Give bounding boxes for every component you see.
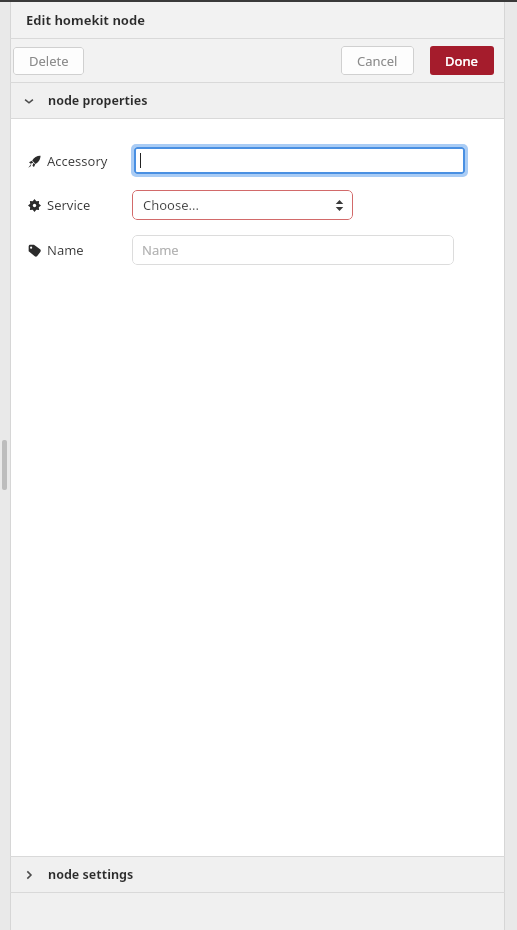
staticText: node settings (48, 866, 134, 883)
staticText: Edit homekit node (26, 11, 145, 29)
button[interactable] (131, 144, 468, 177)
staticText: Cancel (357, 52, 398, 70)
button[interactable]: Cancel (341, 46, 414, 75)
button[interactable]: Choose... (132, 190, 353, 220)
other: Name (28, 244, 41, 257)
button[interactable]: Expand (10, 857, 505, 892)
button[interactable]: Collapse (10, 83, 505, 118)
staticText: Choose... (143, 196, 199, 214)
button[interactable]: Name (132, 235, 454, 265)
staticText: Service (47, 196, 91, 214)
other: Expand (22, 868, 36, 882)
staticText: Accessory (47, 152, 108, 170)
staticText: Name (142, 241, 179, 259)
staticText: node properties (48, 92, 148, 109)
button[interactable]: Done (430, 46, 494, 75)
staticText: Delete (29, 52, 69, 70)
button[interactable]: Delete (13, 47, 84, 75)
staticText: Name (47, 241, 84, 259)
staticText: Done (445, 52, 479, 70)
other: Collapse (22, 94, 36, 108)
other: Service (28, 199, 41, 212)
other: Accessory (28, 155, 41, 168)
